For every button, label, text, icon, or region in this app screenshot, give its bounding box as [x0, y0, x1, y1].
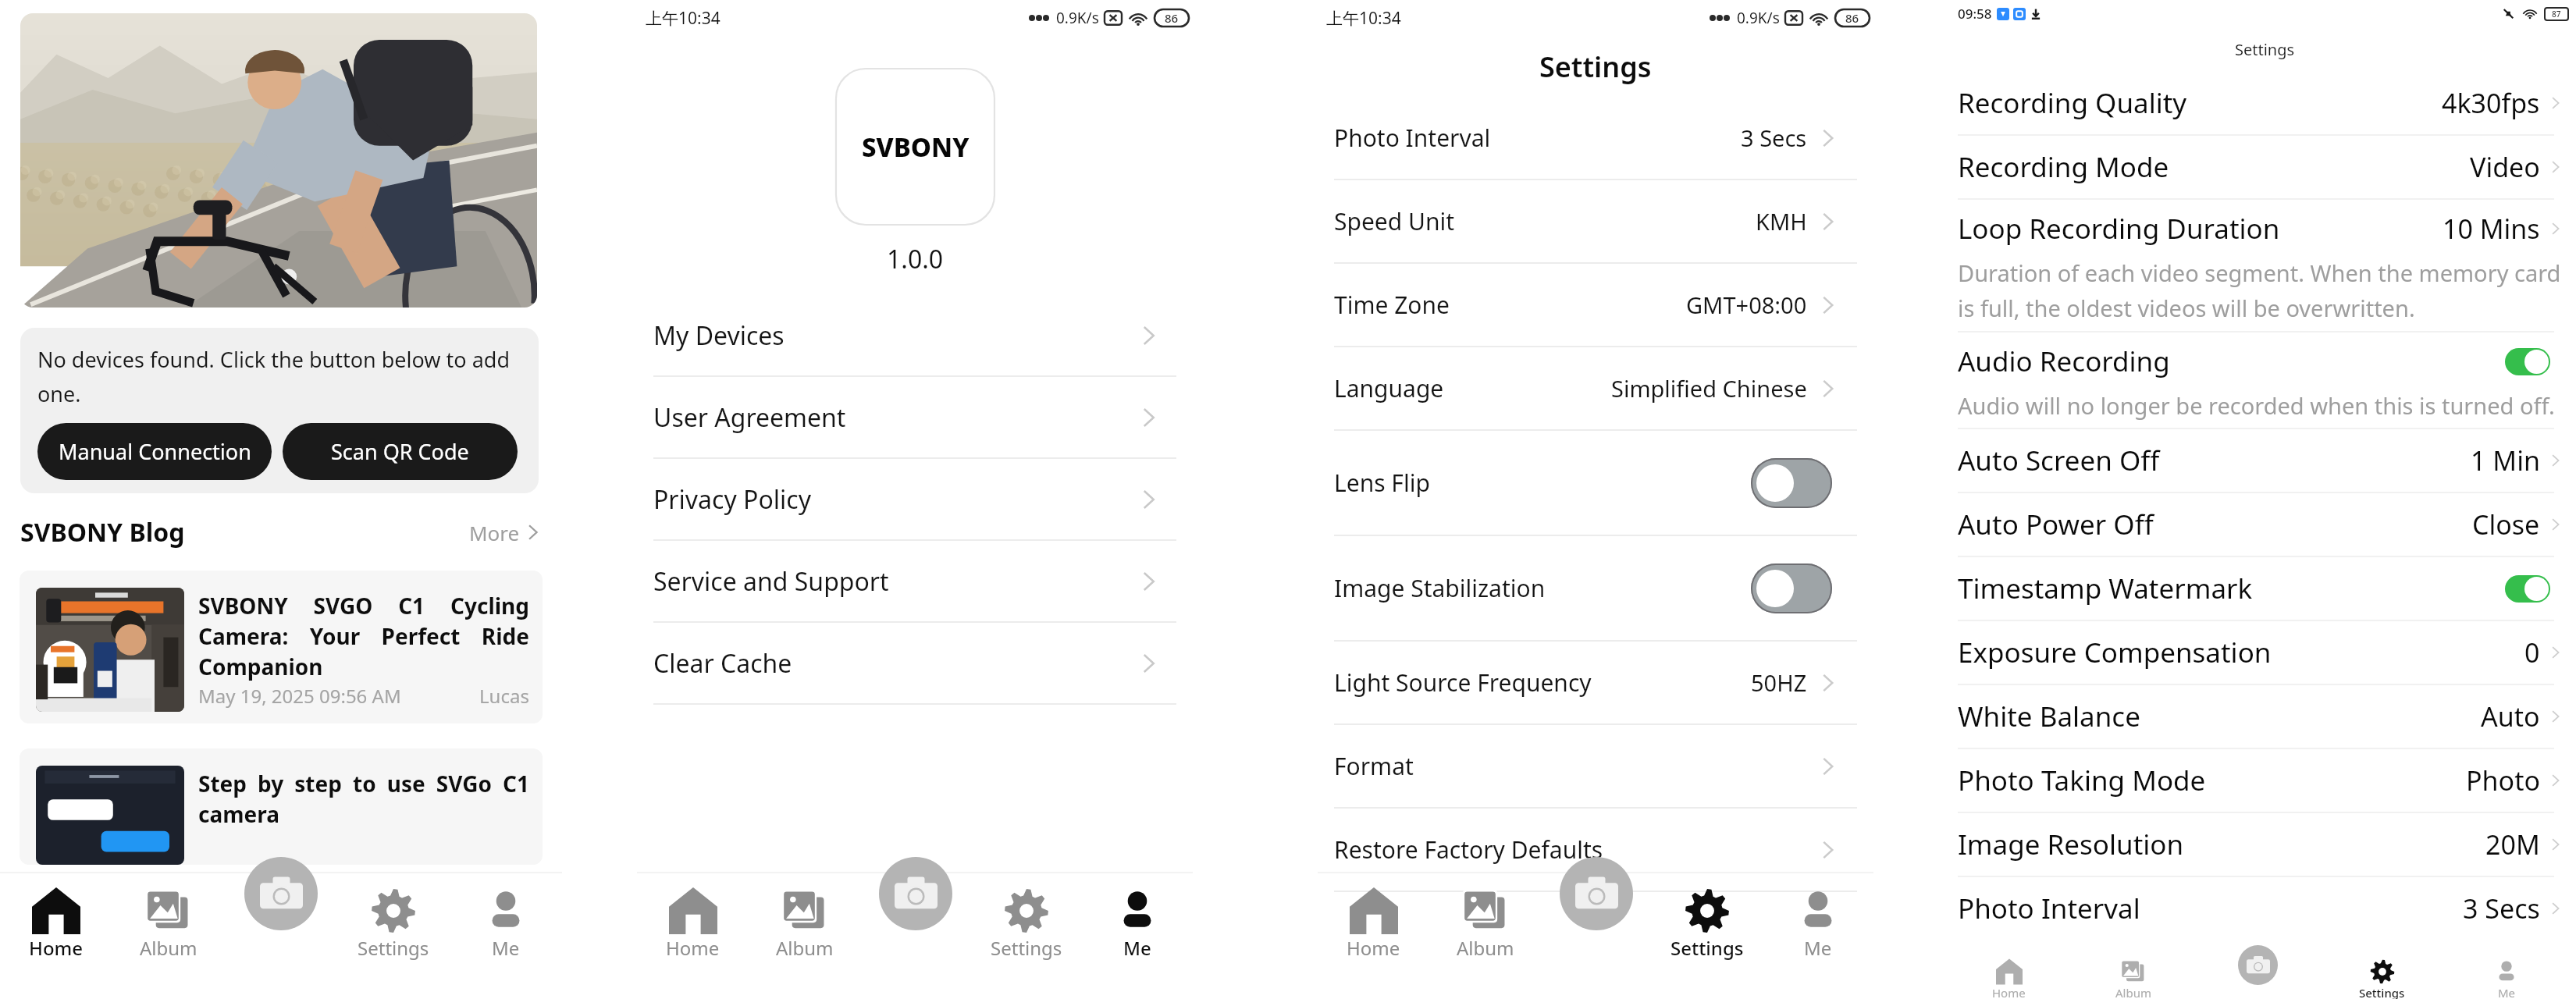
staticText: Close — [2472, 507, 2540, 542]
button[interactable]: Recording Quality — [1954, 72, 2576, 136]
button[interactable]: White Balance — [1954, 685, 2576, 749]
staticText: 1 Min — [2471, 443, 2540, 478]
button[interactable]: Image Stabilization — [1318, 536, 1873, 640]
button[interactable]: User Agreement — [637, 377, 1193, 457]
button[interactable]: Camera — [2238, 945, 2278, 985]
staticText: Album — [1457, 935, 1514, 961]
staticText: Loop Recording Duration — [1958, 210, 2280, 247]
staticText: 86 — [1165, 10, 1179, 26]
staticText: Recording Mode — [1958, 148, 2169, 186]
staticText: No devices found. Click the button below… — [37, 345, 518, 407]
staticText: Me — [1804, 935, 1832, 961]
staticText: Photo Taking Mode — [1958, 762, 2206, 799]
staticText: Photo Interval — [1958, 890, 2140, 927]
button[interactable]: Me — [1763, 872, 1873, 999]
button[interactable]: Camera — [244, 857, 318, 930]
button[interactable]: Album — [2071, 913, 2196, 999]
staticText: Speed Unit — [1334, 205, 1455, 237]
button[interactable]: Settings — [1652, 872, 1763, 999]
button[interactable]: Album — [112, 872, 225, 999]
button[interactable]: Me — [1082, 872, 1193, 999]
button[interactable]: Auto Power Off — [1954, 493, 2576, 557]
button[interactable]: Photo Interval — [1318, 97, 1873, 179]
staticText: 1.0.0 — [887, 242, 944, 276]
button[interactable]: Time Zone — [1318, 264, 1873, 346]
staticText: Me — [492, 935, 520, 961]
staticText: Time Zone — [1334, 289, 1450, 321]
button[interactable]: Scan QR Code — [283, 423, 518, 480]
staticText: Auto Screen Off — [1958, 442, 2160, 479]
button[interactable]: Manual Connection — [37, 423, 272, 480]
button[interactable]: Settings — [971, 872, 1082, 999]
staticText: Audio Recording — [1958, 343, 2170, 380]
button[interactable]: Settings — [2320, 913, 2444, 999]
button[interactable]: Timestamp Watermark — [1954, 557, 2576, 621]
button[interactable]: Camera — [879, 857, 952, 930]
button[interactable]: Audio Recording — [2505, 348, 2550, 375]
staticText: Format — [1334, 750, 1414, 782]
button[interactable]: Clear Cache — [637, 623, 1193, 703]
staticText: May 19, 2025 09:56 AM — [198, 683, 401, 709]
button[interactable]: Auto Screen Off — [1954, 429, 2576, 493]
staticText: 10 Mins — [2443, 211, 2540, 247]
button[interactable]: Exposure Compensation — [1954, 621, 2576, 685]
button[interactable]: Settings — [337, 872, 450, 999]
button[interactable]: Me — [450, 872, 562, 999]
button[interactable]: Service and Support — [637, 541, 1193, 621]
staticText: 上午10:34 — [1326, 7, 1401, 30]
button[interactable]: Album — [749, 872, 860, 999]
button[interactable]: Lens Flip — [1751, 458, 1832, 508]
button[interactable]: Light Source Frequency — [1318, 642, 1873, 723]
button[interactable]: Photo Interval — [1954, 877, 2576, 940]
button[interactable]: Recording Mode — [1954, 136, 2576, 200]
staticText: Auto Power Off — [1958, 506, 2154, 543]
button[interactable]: Camera — [1560, 857, 1633, 930]
button[interactable]: Lens Flip — [1318, 431, 1873, 535]
staticText: Clear Cache — [653, 646, 792, 681]
staticText: Settings — [2235, 39, 2295, 60]
button[interactable]: Restore Factory Defaults — [1318, 809, 1873, 891]
button[interactable]: Image Stabilization — [1751, 563, 1832, 613]
button[interactable]: Step by step to use SVGo C1 camera — [20, 748, 543, 865]
button[interactable]: Speed Unit — [1318, 180, 1873, 262]
button[interactable]: Language — [1318, 347, 1873, 429]
staticText: 50HZ — [1751, 667, 1807, 698]
button[interactable]: Camera — [2196, 913, 2320, 999]
staticText: Settings — [991, 935, 1062, 961]
staticText: My Devices — [653, 318, 785, 353]
staticText: Manual Connection — [59, 437, 251, 466]
staticText: Recording Quality — [1958, 84, 2187, 122]
button[interactable]: Camera — [1541, 872, 1652, 999]
staticText: Simplified Chinese — [1611, 373, 1807, 404]
button[interactable]: Home — [1946, 913, 2071, 999]
staticText: Image Resolution — [1958, 826, 2184, 863]
button[interactable]: Image Resolution — [1954, 813, 2576, 877]
button[interactable]: SVBONY Blog — [20, 515, 542, 549]
button[interactable]: Camera — [225, 872, 337, 999]
button[interactable]: Home — [637, 872, 749, 999]
staticText: 0.9K/s — [1737, 8, 1780, 28]
staticText: Step by step to use SVGo C1 camera — [198, 769, 529, 829]
staticText: Video — [2470, 149, 2540, 185]
button[interactable]: Format — [1318, 725, 1873, 807]
button[interactable]: Album — [1429, 872, 1541, 999]
staticText: Me — [1123, 935, 1151, 961]
button[interactable]: My Devices — [637, 295, 1193, 375]
button[interactable]: Loop Recording Duration — [1954, 200, 2576, 332]
button[interactable]: Me — [2444, 913, 2568, 999]
staticText: GMT+08:00 — [1686, 290, 1807, 320]
button[interactable]: Timestamp Watermark — [2505, 575, 2550, 603]
button[interactable]: Audio Recording — [1954, 332, 2576, 429]
staticText: Home — [666, 935, 720, 961]
button[interactable]: Photo Taking Mode — [1954, 749, 2576, 813]
button[interactable]: Camera — [860, 872, 971, 999]
button[interactable]: SVBONY SVGO C1 Cycling Camera: Your Perf… — [20, 571, 543, 723]
staticText: 86 — [1845, 10, 1859, 26]
staticText: Audio will no longer be recorded when th… — [1958, 390, 2555, 421]
staticText: 0 — [2524, 635, 2540, 670]
staticText: 0.9K/s — [1056, 8, 1099, 28]
button[interactable]: Home — [1318, 872, 1429, 999]
staticText: Album — [2115, 985, 2151, 999]
button[interactable]: Home — [0, 872, 112, 999]
button[interactable]: Privacy Policy — [637, 459, 1193, 539]
